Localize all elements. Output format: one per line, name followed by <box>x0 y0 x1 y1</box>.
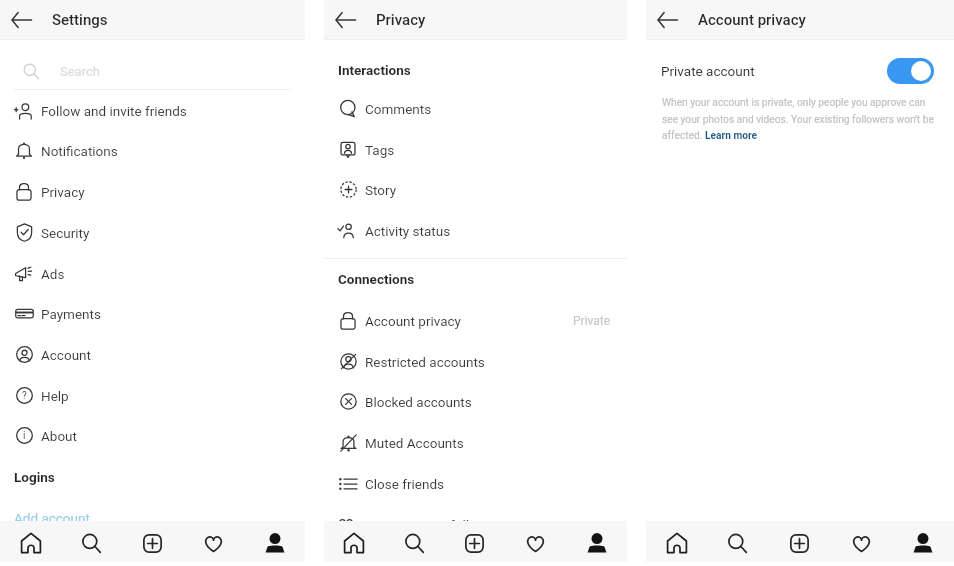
button[interactable]: Accounts you follow <box>324 504 627 521</box>
staticText: Restricted accounts <box>365 354 485 370</box>
staticText: Private <box>573 314 611 328</box>
staticText: Interactions <box>338 62 411 78</box>
staticText: Connections <box>338 271 415 287</box>
staticText: ? <box>22 390 27 402</box>
button[interactable]: Follow and invite friends <box>0 90 305 131</box>
button[interactable]: Back <box>652 5 682 35</box>
button[interactable]: Activity <box>830 521 892 562</box>
button[interactable]: Muted Accounts <box>324 422 627 463</box>
button[interactable]: i <box>0 415 305 456</box>
staticText: Help <box>41 388 69 404</box>
staticText: Story <box>365 182 397 198</box>
staticText: Blocked accounts <box>365 394 472 410</box>
button[interactable]: Home <box>646 521 707 562</box>
button[interactable]: Tags <box>324 129 627 170</box>
button[interactable]: New post <box>768 521 830 562</box>
staticText: Logins <box>14 469 55 485</box>
staticText: i <box>23 430 26 442</box>
button[interactable]: Privacy <box>0 171 305 212</box>
staticText: Muted Accounts <box>365 435 464 451</box>
button[interactable]: Activity <box>505 521 566 562</box>
button[interactable]: Close friends <box>324 463 627 504</box>
button[interactable]: Blocked accounts <box>324 381 627 422</box>
button[interactable]: Account privacy <box>324 300 627 341</box>
staticText: Add account <box>14 510 90 521</box>
button[interactable]: Search <box>61 521 122 562</box>
staticText: Privacy <box>41 184 85 200</box>
button[interactable]: Notifications <box>0 130 305 171</box>
button[interactable]: Story <box>324 169 627 210</box>
staticText: Accounts you follow <box>365 517 487 521</box>
staticText: Notifications <box>41 143 118 159</box>
staticText: Follow and invite friends <box>41 103 187 119</box>
staticText: Ads <box>41 266 65 282</box>
staticText: Activity status <box>365 223 451 239</box>
staticText: When your account is private, only peopl… <box>662 97 935 141</box>
staticText: Payments <box>41 306 101 322</box>
button[interactable]: Search <box>707 521 768 562</box>
button[interactable]: Restricted accounts <box>324 341 627 382</box>
button[interactable]: Add account <box>0 497 305 521</box>
staticText: Security <box>41 225 90 241</box>
staticText: Private account <box>661 63 755 79</box>
staticText: Account privacy <box>698 11 806 29</box>
button[interactable]: Activity status <box>324 210 627 251</box>
button[interactable]: ? <box>0 375 305 416</box>
staticText: Tags <box>365 142 395 158</box>
button[interactable]: Ads <box>0 253 305 294</box>
button[interactable]: Profile <box>892 521 954 562</box>
button[interactable]: Back <box>6 5 36 35</box>
button[interactable]: Profile <box>244 521 305 562</box>
button[interactable]: Activity <box>183 521 244 562</box>
button[interactable]: Security <box>0 212 305 253</box>
staticText: Account privacy <box>365 313 461 329</box>
button[interactable]: Back <box>330 5 360 35</box>
staticText: Privacy <box>376 11 426 29</box>
button[interactable]: Home <box>0 521 61 562</box>
button[interactable]: New post <box>444 521 505 562</box>
staticText: Account <box>41 347 91 363</box>
staticText: Settings <box>52 11 108 29</box>
button[interactable]: Account <box>0 334 305 375</box>
staticText: About <box>41 428 77 444</box>
staticText: Search <box>60 64 100 79</box>
button[interactable]: Comments <box>324 88 627 129</box>
button[interactable]: Profile <box>566 521 627 562</box>
button[interactable]: New post <box>122 521 183 562</box>
button[interactable]: Search <box>384 521 444 562</box>
button[interactable]: Payments <box>0 293 305 334</box>
staticText: Comments <box>365 101 432 117</box>
staticText: Close friends <box>365 476 444 492</box>
button[interactable]: Private account <box>646 41 954 101</box>
button[interactable]: Home <box>324 521 384 562</box>
